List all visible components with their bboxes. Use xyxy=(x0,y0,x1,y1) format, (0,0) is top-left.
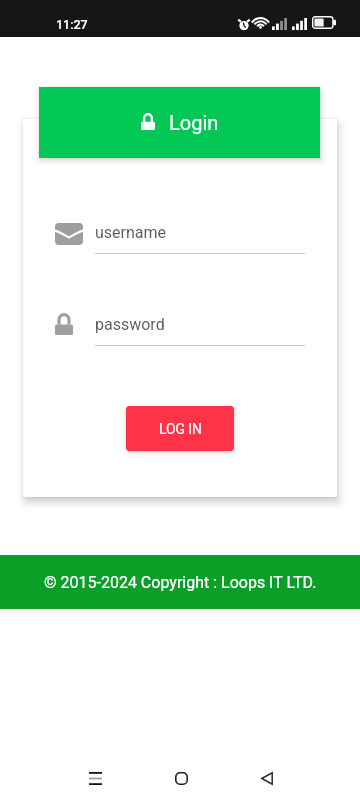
button[interactable]: Home xyxy=(157,754,205,800)
button[interactable]: Login xyxy=(39,87,320,158)
button[interactable]: LOG IN xyxy=(126,406,234,451)
staticText: password xyxy=(95,315,165,334)
staticText: username xyxy=(95,223,167,242)
staticText: LOG IN xyxy=(159,421,202,437)
staticText: © 2015-2024 Copyright : Loops IT LTD. xyxy=(44,573,317,592)
button[interactable]: Recent apps xyxy=(71,754,119,800)
button[interactable]: Back xyxy=(243,754,291,800)
staticText: Login xyxy=(169,111,219,134)
staticText: 11:27 xyxy=(56,17,88,32)
